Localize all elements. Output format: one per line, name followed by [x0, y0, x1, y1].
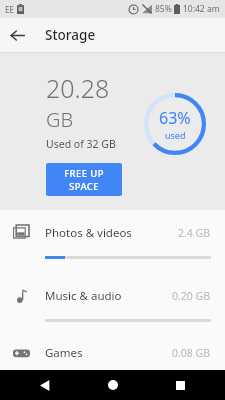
staticText: 2.4 GB: [178, 226, 211, 240]
staticText: GB: [46, 106, 74, 133]
button[interactable]: FREE UP SPACE: [46, 163, 122, 196]
staticText: Photos & videos: [45, 225, 132, 241]
button[interactable]: Games: [0, 336, 225, 370]
staticText: Games: [45, 345, 83, 361]
button[interactable]: Back: [23, 370, 67, 400]
staticText: Used of 32 GB: [46, 137, 116, 151]
staticText: EE: [5, 4, 14, 15]
button[interactable]: Music & audio: [0, 273, 225, 336]
staticText: 0.08 GB: [172, 346, 211, 360]
button[interactable]: Home: [91, 370, 135, 400]
button[interactable]: Back: [0, 18, 34, 52]
staticText: 10:42 am: [183, 3, 220, 15]
staticText: FREE UP SPACE: [46, 167, 122, 193]
button[interactable]: Photos & videos: [0, 210, 225, 273]
staticText: 85%: [155, 3, 172, 15]
staticText: 20.28: [46, 71, 110, 105]
staticText: Music & audio: [45, 288, 122, 304]
staticText: used: [165, 129, 186, 141]
button[interactable]: Recent apps: [158, 370, 202, 400]
staticText: 63%: [159, 107, 191, 129]
staticText: 0.20 GB: [172, 289, 211, 303]
staticText: Storage: [45, 26, 96, 44]
